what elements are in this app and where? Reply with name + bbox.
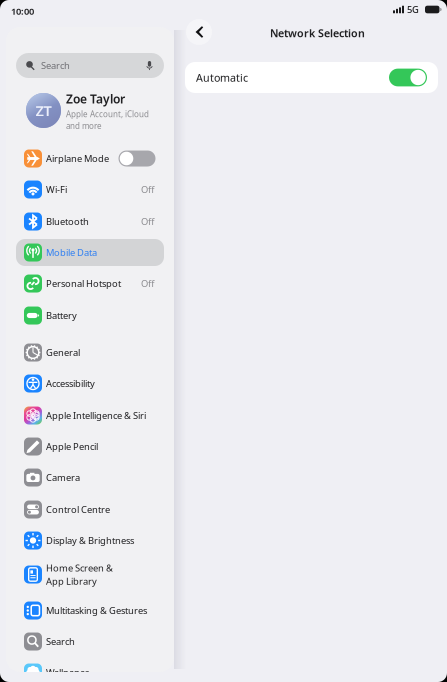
staticText: Apple Account, iCloud — [66, 109, 149, 119]
staticText: 10:00 — [11, 5, 34, 17]
staticText: Personal Hotspot — [46, 277, 121, 290]
button[interactable]: Bluetooth — [16, 208, 164, 235]
staticText: Automatic — [196, 70, 248, 85]
staticText: Camera — [46, 471, 80, 484]
button[interactable]: Home Screen & — [16, 558, 164, 590]
staticText: Off — [141, 277, 154, 290]
staticText: Apple Intelligence & Siri — [46, 409, 146, 422]
staticText: Multitasking & Gestures — [46, 604, 147, 617]
staticText: Off — [141, 215, 154, 228]
button[interactable]: Wi-Fi — [16, 176, 164, 203]
staticText: App Library — [46, 575, 97, 587]
staticText: Wi-Fi — [46, 183, 67, 196]
button[interactable]: Control Centre — [16, 496, 164, 523]
button[interactable]: Airplane Mode — [16, 145, 164, 172]
staticText: Display & Brightness — [46, 534, 134, 547]
button[interactable]: Back — [186, 19, 212, 45]
staticText: Network Selection — [270, 26, 365, 40]
staticText: and more — [66, 120, 102, 131]
button[interactable]: Mobile Data — [16, 239, 164, 266]
staticText: Mobile Data — [46, 246, 97, 259]
staticText: Control Centre — [46, 503, 110, 516]
staticText: Search — [41, 59, 70, 72]
button[interactable]: Apple Intelligence & Siri — [16, 402, 164, 429]
button[interactable]: Multitasking & Gestures — [16, 597, 164, 624]
staticText: Wallpaper — [46, 666, 89, 679]
button[interactable]: ZT — [16, 90, 164, 131]
button[interactable]: Search — [16, 628, 164, 655]
button[interactable]: Display & Brightness — [16, 527, 164, 554]
staticText: 5G — [407, 3, 419, 16]
button[interactable]: Wallpaper — [16, 659, 164, 682]
button[interactable]: Camera — [16, 464, 164, 491]
staticText: Home Screen & — [46, 562, 113, 574]
button[interactable]: Accessibility — [16, 370, 164, 397]
staticText: General — [46, 346, 80, 359]
button[interactable]: Automatic — [185, 62, 438, 93]
button[interactable]: Battery — [16, 302, 164, 329]
button[interactable]: Search — [16, 53, 164, 78]
staticText: Search — [46, 635, 75, 648]
button[interactable]: Apple Pencil — [16, 433, 164, 460]
staticText: Accessibility — [46, 377, 95, 390]
staticText: Zoe Taylor — [66, 91, 125, 107]
button[interactable]: General — [16, 339, 164, 366]
staticText: ZT — [35, 101, 51, 120]
button[interactable]: Personal Hotspot — [16, 270, 164, 297]
staticText: Battery — [46, 309, 77, 322]
staticText: Airplane Mode — [46, 152, 109, 165]
staticText: Bluetooth — [46, 215, 89, 228]
staticText: Off — [141, 183, 154, 196]
staticText: Apple Pencil — [46, 440, 98, 453]
